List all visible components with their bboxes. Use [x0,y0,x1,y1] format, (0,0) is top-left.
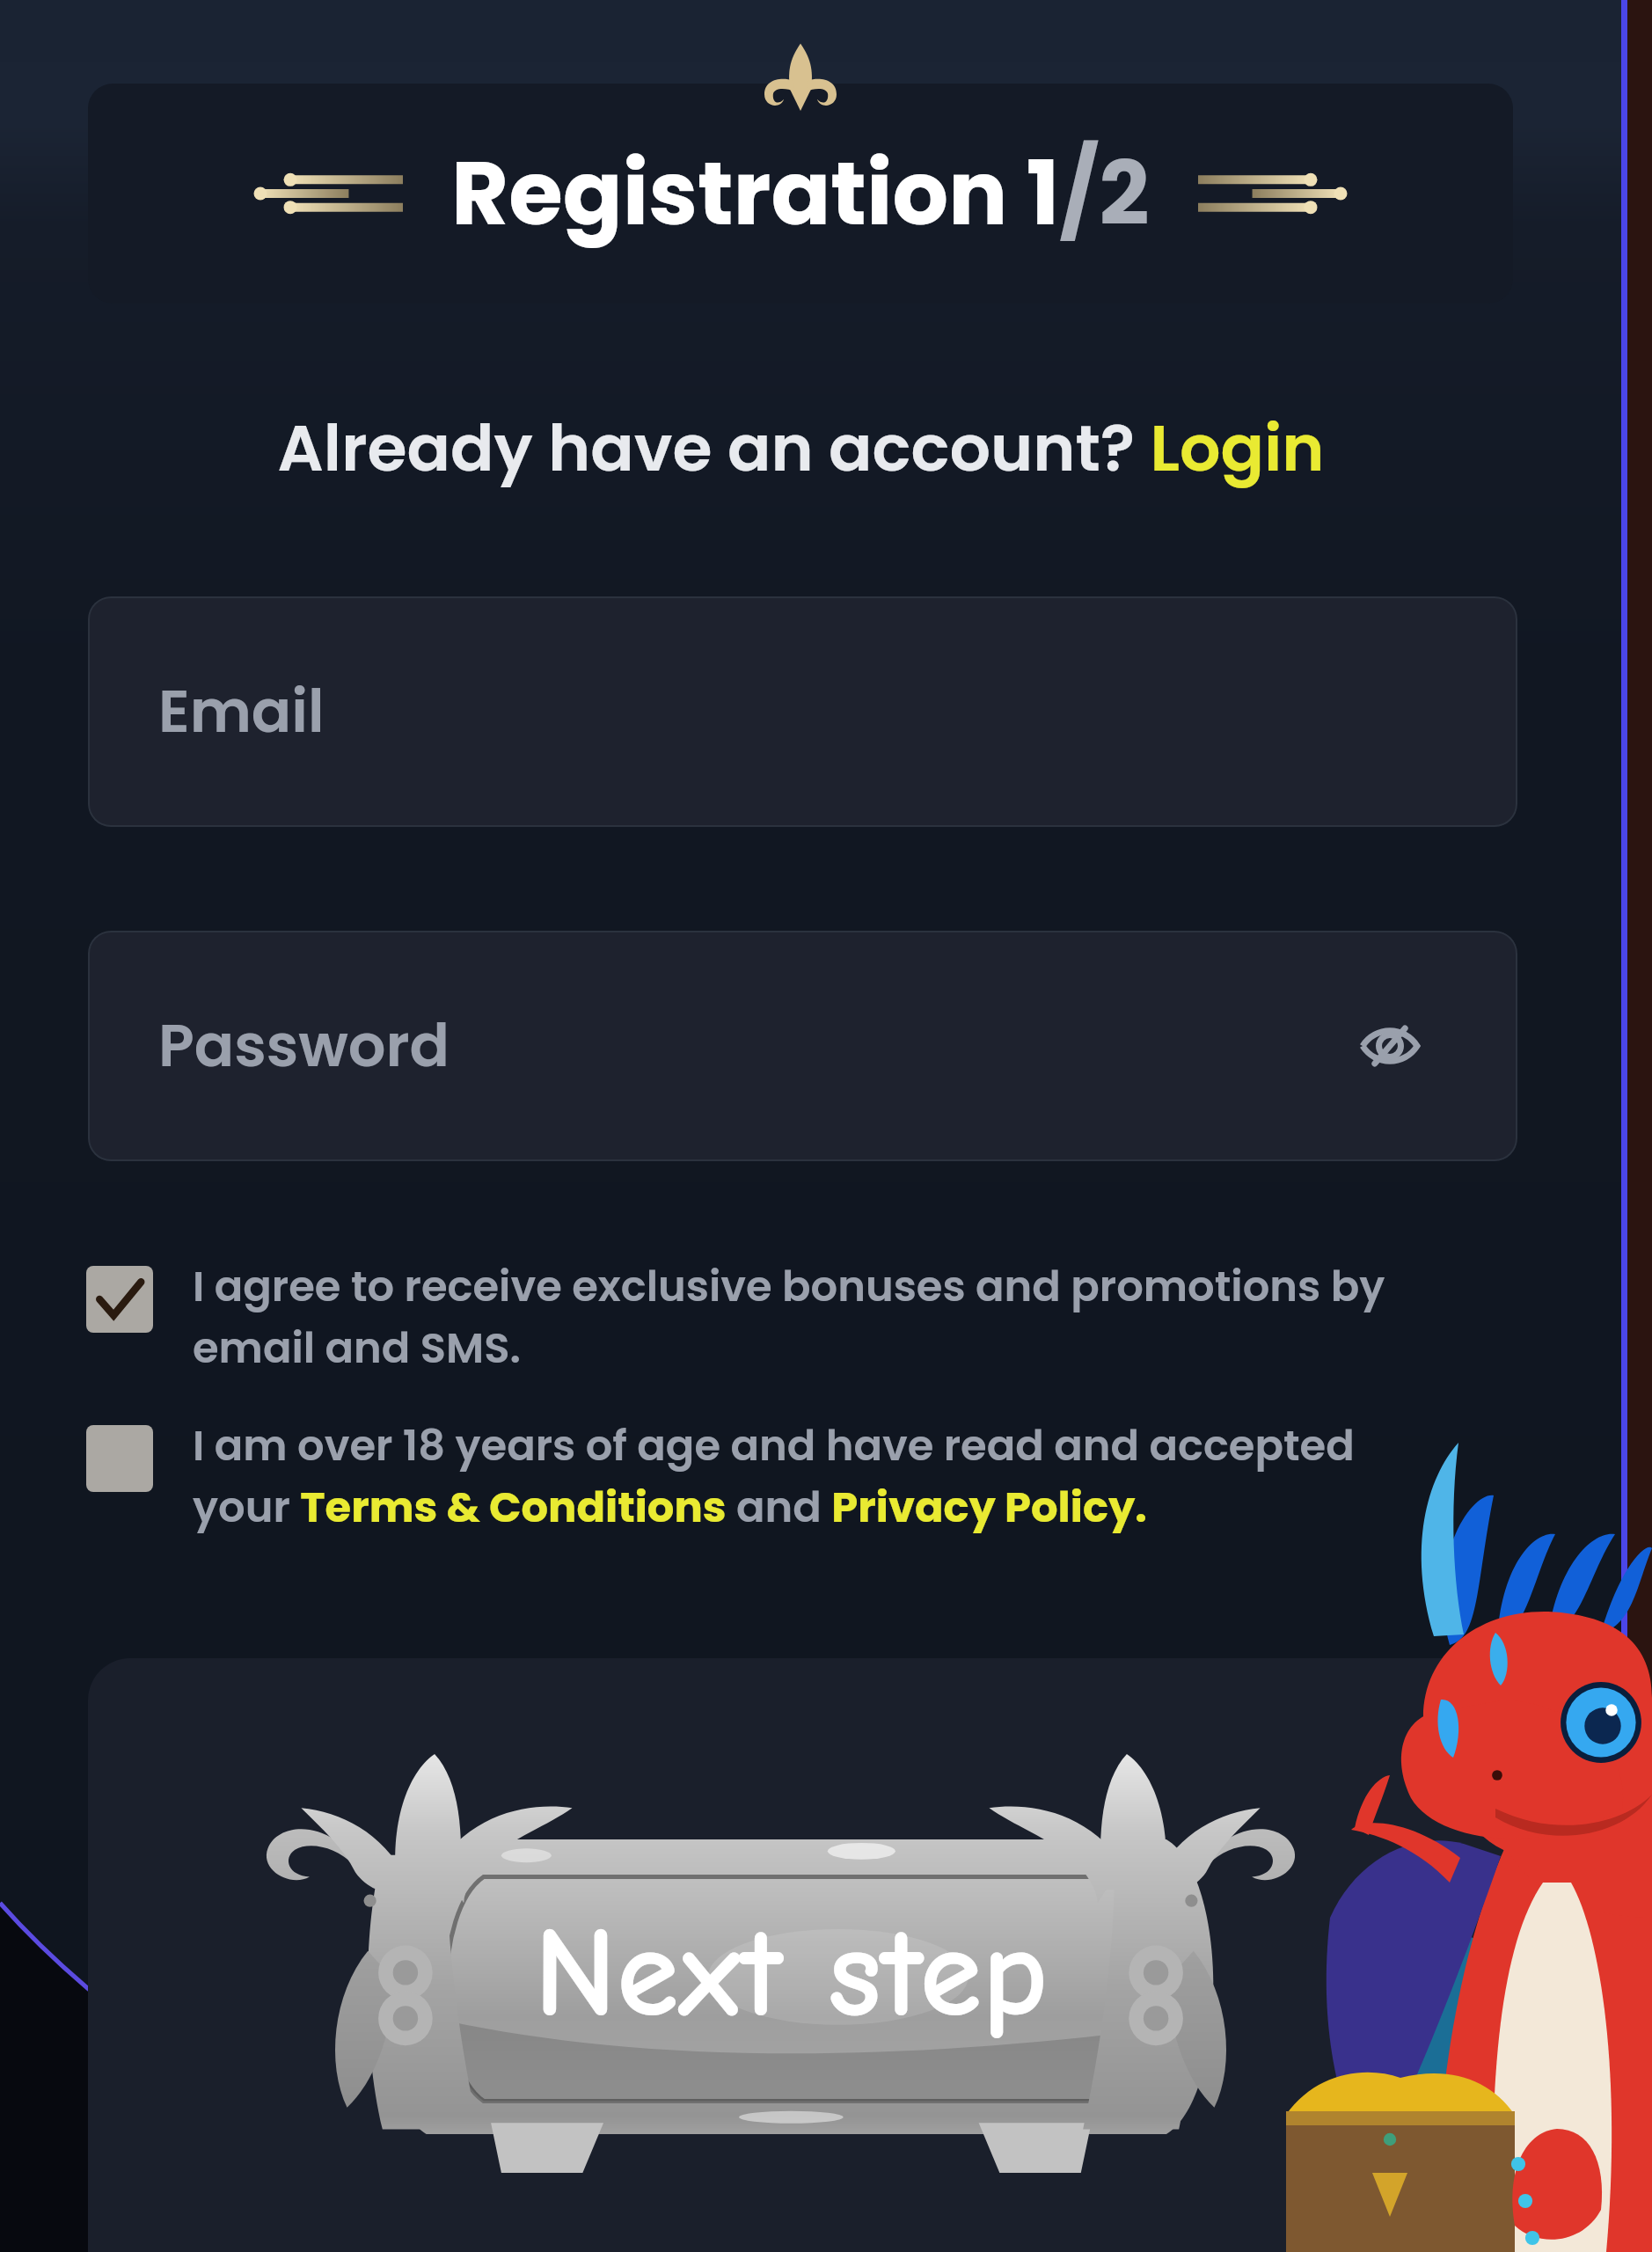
staticText: I agree to receive exclusive bonuses and… [193,1257,1441,1378]
staticText: Password [158,1005,450,1087]
other: Show password [1361,1024,1419,1068]
button[interactable]: Next step [259,1746,1302,2182]
staticText: Already have an account? Login [277,403,1325,493]
staticText: I am over 18 years of age and have read … [193,1416,1441,1537]
button[interactable]: Already have an account? Login [0,386,1652,509]
staticText: Email [158,670,325,753]
button[interactable]: I agree to receive exclusive bonuses and… [86,1266,1441,1386]
staticText: Next step [534,1900,1049,2046]
staticText: Registration 1/2 [451,132,1150,255]
button[interactable]: Password [88,931,1517,1161]
button[interactable]: Email [88,596,1517,827]
button[interactable]: I am over 18 years of age and have read … [86,1425,1441,1546]
